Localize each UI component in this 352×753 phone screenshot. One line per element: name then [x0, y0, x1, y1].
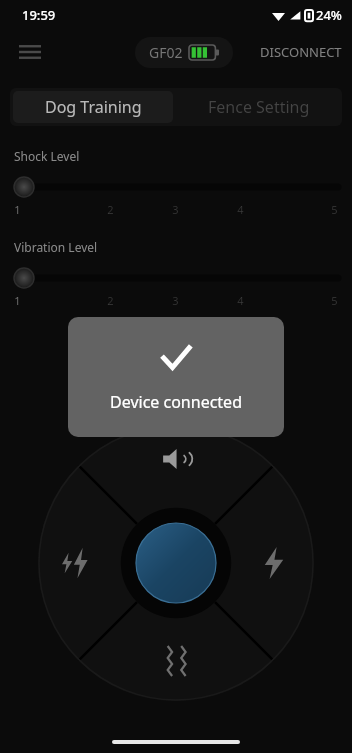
staticText: 19:59	[22, 6, 56, 24]
staticText: DISCONNECT	[260, 43, 342, 61]
staticText: 1	[14, 293, 21, 308]
staticText: Dog Training	[45, 96, 142, 118]
button[interactable]: GF02	[135, 37, 233, 68]
button[interactable]: Shock	[248, 537, 300, 589]
button[interactable]: Dog Training	[13, 91, 173, 123]
staticText: 3	[172, 202, 179, 217]
staticText: GF02	[149, 43, 183, 62]
staticText: 3	[172, 293, 179, 308]
button[interactable]	[14, 267, 338, 289]
button[interactable]	[14, 176, 338, 198]
staticText: Device connected	[110, 391, 242, 413]
staticText: 2	[107, 202, 114, 217]
staticText: 24%	[316, 6, 342, 24]
button[interactable]: Strong shock	[52, 537, 104, 589]
staticText: 2	[107, 293, 114, 308]
staticText: 4	[237, 202, 244, 217]
staticText: 1	[14, 202, 21, 217]
button[interactable]: Vibrate	[150, 635, 202, 687]
staticText: Vibration Level	[14, 239, 98, 255]
button[interactable]: Beep	[154, 437, 198, 481]
staticText: 4	[237, 293, 244, 308]
staticText: 5	[331, 293, 338, 308]
staticText: 5	[331, 202, 338, 217]
staticText: Shock Level	[14, 148, 80, 164]
button[interactable]: Device connected	[68, 317, 284, 437]
button[interactable]: DISCONNECT	[250, 35, 352, 69]
button[interactable]: Menu	[8, 30, 52, 74]
staticText: Fence Setting	[208, 96, 310, 118]
button[interactable]: Fence Setting	[176, 88, 342, 126]
